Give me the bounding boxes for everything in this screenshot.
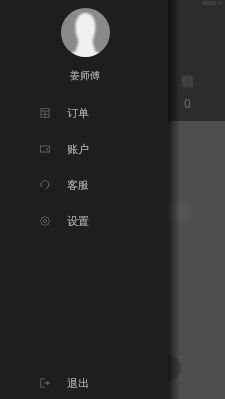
- button[interactable]: 退出: [0, 365, 168, 399]
- button[interactable]: Profile photo: [61, 8, 110, 57]
- staticText: 0: [184, 95, 191, 111]
- staticText: 姜师傅: [55, 69, 115, 82]
- staticText: 退出: [67, 376, 89, 390]
- button[interactable]: 客服: [0, 167, 168, 203]
- button[interactable]: 订单: [0, 95, 168, 131]
- button[interactable]: 设置: [0, 203, 168, 239]
- staticText: 设置: [67, 214, 89, 228]
- button[interactable]: 账户: [0, 131, 168, 167]
- staticText: 客服: [67, 178, 89, 192]
- staticText: 订单: [67, 106, 89, 120]
- staticText: 账户: [67, 142, 89, 156]
- button[interactable]: Add: [155, 355, 181, 381]
